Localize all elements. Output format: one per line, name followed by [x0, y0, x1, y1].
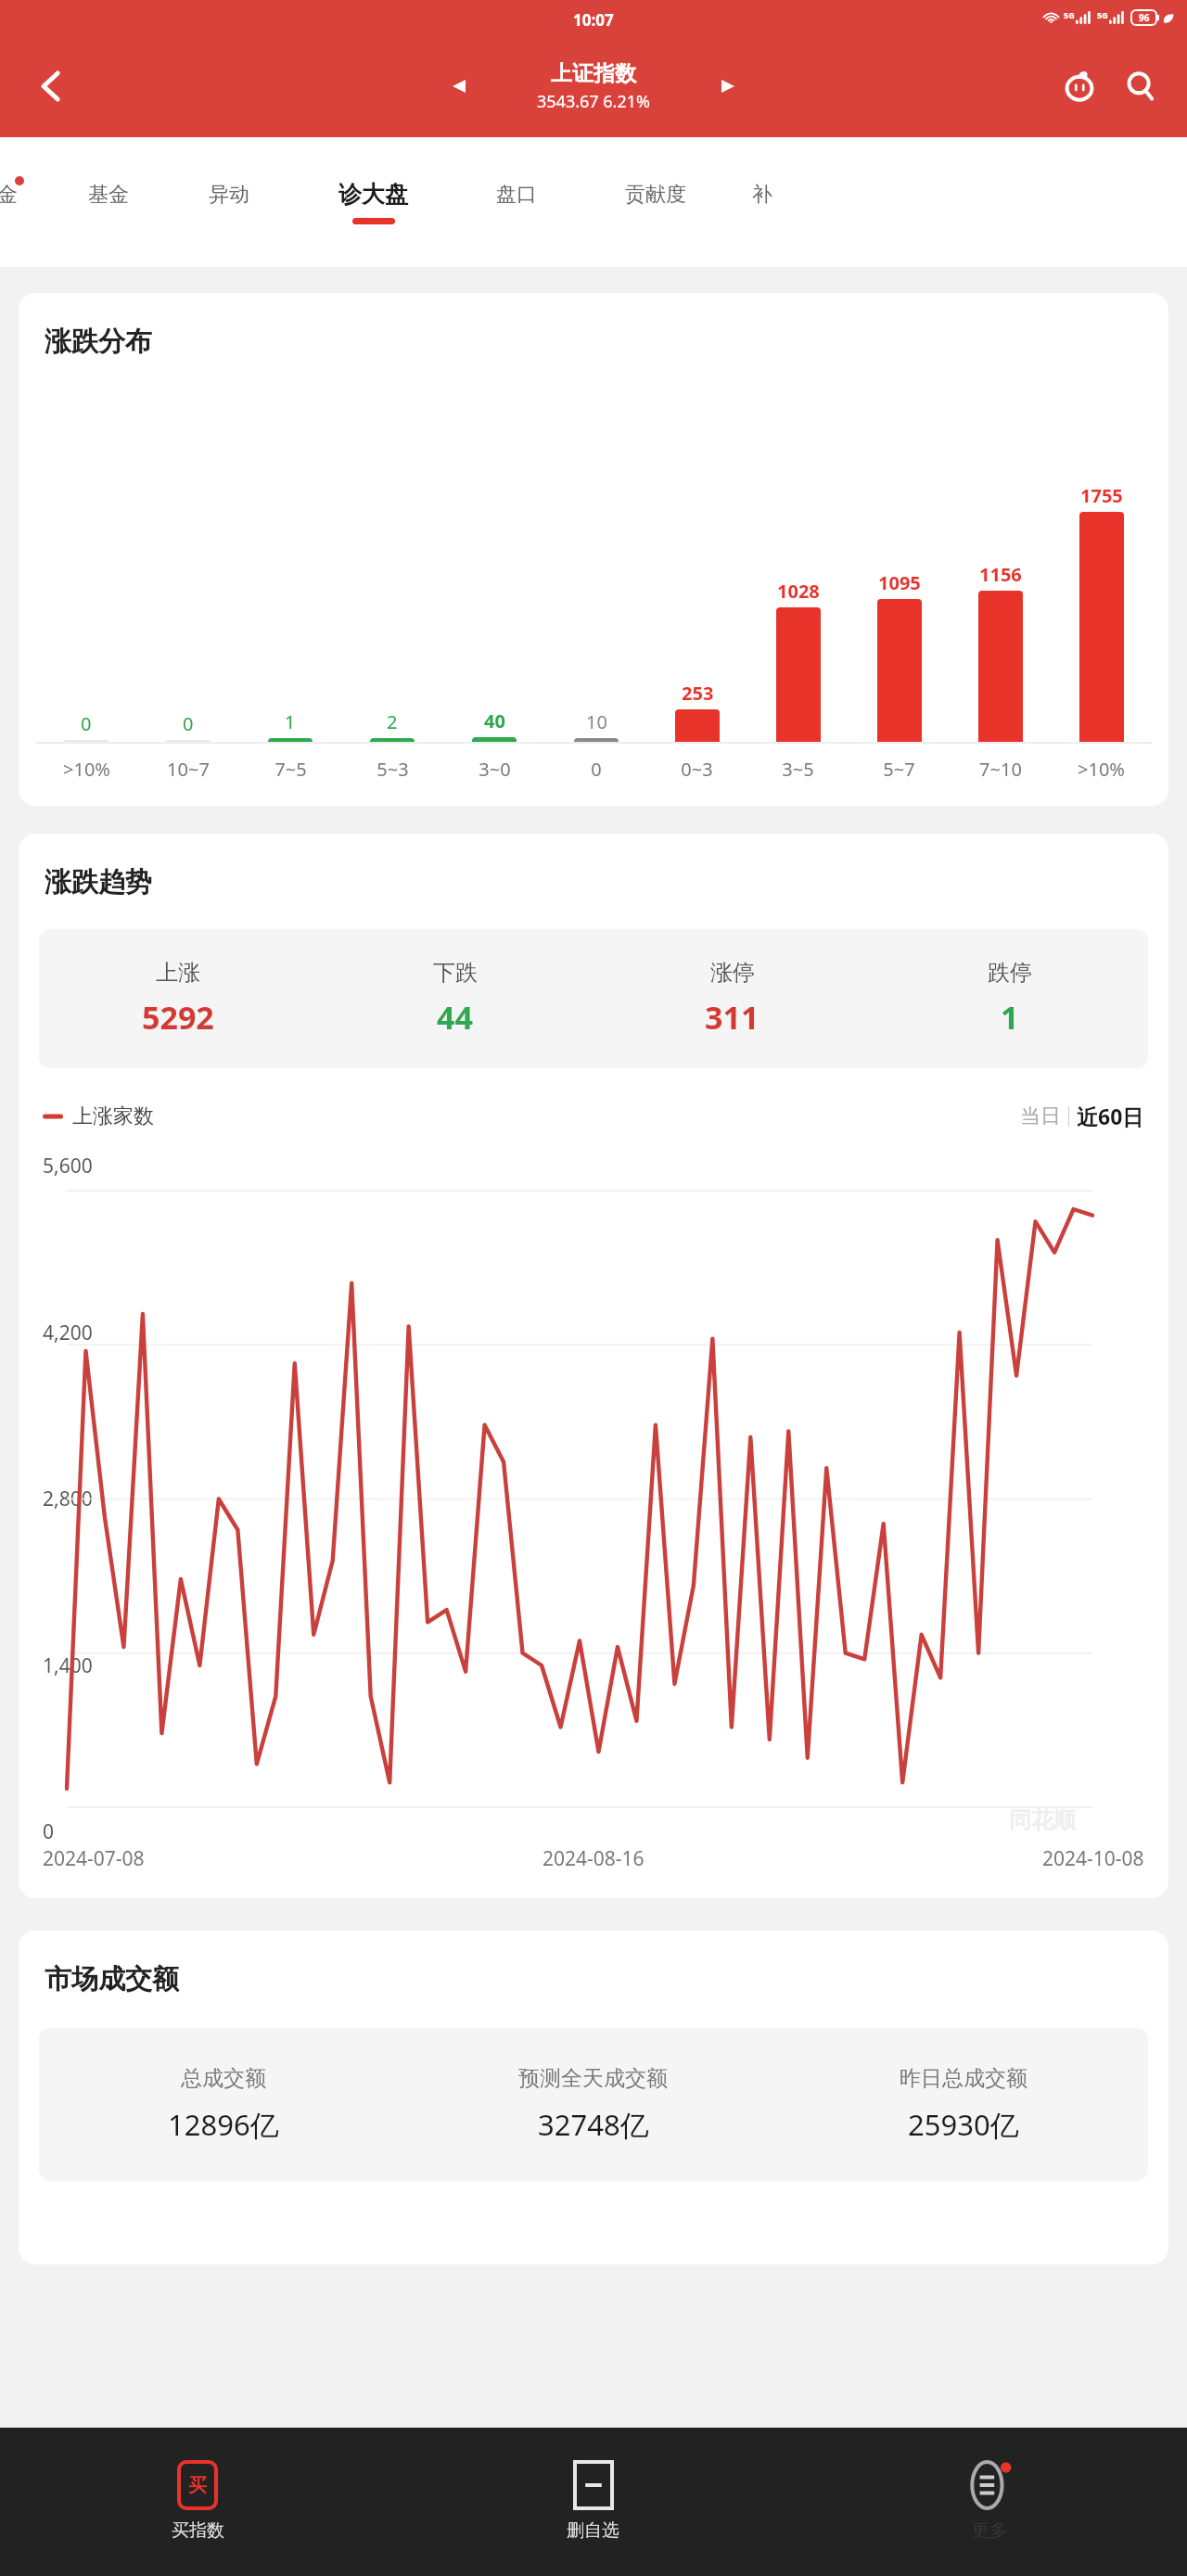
button[interactable]: More — [791, 2428, 1187, 2576]
staticText: 涨跌分布 — [45, 325, 152, 359]
button[interactable]: 贡献度 — [577, 137, 734, 267]
staticText: 3~0 — [479, 757, 511, 782]
button[interactable]: 诊大盘 — [289, 137, 456, 267]
button[interactable]: 补 — [734, 137, 790, 267]
staticText: 买 — [188, 2474, 207, 2497]
button[interactable]: 上证指数 — [537, 60, 650, 113]
staticText: 7~10 — [979, 757, 1022, 782]
staticText: 253 — [682, 681, 714, 706]
staticText: 上涨 — [156, 959, 200, 987]
button[interactable]: 跌停 — [871, 959, 1148, 1039]
staticText: 5G — [1097, 9, 1108, 20]
staticText: 0 — [183, 711, 194, 736]
staticText: 涨停 — [710, 959, 755, 987]
staticText: >10% — [63, 757, 110, 782]
staticText: 总成交额 — [181, 2065, 266, 2092]
staticText: 10~7 — [167, 757, 210, 782]
button[interactable]: Back — [26, 60, 78, 112]
button[interactable]: 下跌 — [316, 959, 593, 1039]
staticText: 0 — [81, 711, 92, 736]
staticText: 当日 — [1020, 1103, 1061, 1129]
staticText: 10 — [586, 709, 607, 734]
staticText: 1095 — [878, 570, 921, 595]
staticText: 32748亿 — [538, 2105, 649, 2144]
button[interactable]: 总成交额 — [39, 2065, 408, 2144]
staticText: 基金 — [88, 182, 129, 208]
staticText: 12896亿 — [168, 2105, 279, 2144]
staticText: 44 — [437, 996, 473, 1039]
staticText: 1 — [1001, 996, 1019, 1039]
staticText: 金 — [0, 182, 18, 208]
staticText: 贡献度 — [625, 182, 686, 208]
staticText: 异动 — [209, 182, 249, 208]
button[interactable]: 当日 — [1020, 1102, 1144, 1130]
staticText: 1028 — [777, 579, 820, 604]
button[interactable]: 盘口 — [456, 137, 577, 267]
staticText: 5,600 — [43, 1153, 93, 1180]
staticText: 0~3 — [681, 757, 713, 782]
staticText: 96 — [1139, 11, 1150, 24]
staticText: 昨日总成交额 — [900, 2065, 1027, 2092]
staticText: >10% — [1078, 757, 1125, 782]
staticText: 补 — [752, 182, 772, 208]
button[interactable]: 涨停 — [593, 959, 871, 1039]
button[interactable]: 异动 — [169, 137, 289, 267]
button[interactable]: Next index — [707, 65, 749, 108]
staticText: 3543.67 6.21% — [537, 90, 650, 113]
staticText: 3~5 — [782, 757, 814, 782]
staticText: 买指数 — [172, 2519, 224, 2542]
staticText: 跌停 — [988, 959, 1032, 987]
button[interactable]: 昨日总成交额 — [778, 2065, 1148, 2144]
staticText: 涨跌趋势 — [45, 865, 152, 899]
staticText: 7~5 — [274, 757, 307, 782]
staticText: 5G — [1064, 9, 1075, 20]
staticText: 25930亿 — [908, 2105, 1019, 2144]
staticText: 5~3 — [377, 757, 409, 782]
button[interactable]: 买 — [0, 2428, 395, 2576]
button[interactable]: Previous index — [438, 65, 480, 108]
staticText: 0 — [591, 757, 602, 782]
staticText: 2 — [387, 709, 398, 734]
staticText: 2024-08-16 — [542, 1845, 645, 1872]
staticText: 市场成交额 — [45, 1962, 179, 1996]
staticText: 近60日 — [1077, 1102, 1144, 1130]
button[interactable]: Assistant — [1053, 60, 1105, 112]
staticText: 更多 — [972, 2519, 1007, 2542]
staticText: 同花顺 — [1009, 1806, 1076, 1834]
staticText: 5292 — [142, 996, 214, 1039]
staticText: 上证指数 — [551, 60, 636, 87]
button[interactable]: Search — [1115, 60, 1167, 112]
staticText: 40 — [484, 708, 505, 733]
button[interactable]: 基金 — [48, 137, 169, 267]
button[interactable]: 删自选 — [395, 2428, 791, 2576]
staticText: 盘口 — [496, 182, 537, 208]
staticText: 1156 — [979, 562, 1022, 587]
staticText: 1,400 — [43, 1652, 93, 1679]
staticText: 1755 — [1080, 483, 1123, 508]
staticText: 1 — [285, 709, 296, 734]
staticText: 311 — [705, 996, 759, 1039]
staticText: 预测全天成交额 — [518, 2065, 668, 2092]
button[interactable]: 上涨 — [39, 959, 316, 1039]
staticText: 5~7 — [883, 757, 915, 782]
staticText: 10:07 — [573, 9, 614, 31]
button[interactable]: 金 — [0, 137, 32, 267]
staticText: 2024-07-08 — [43, 1845, 145, 1872]
staticText: 上涨家数 — [72, 1103, 154, 1129]
staticText: 4,200 — [43, 1320, 93, 1346]
staticText: 2024-10-08 — [1042, 1845, 1144, 1872]
staticText: 诊大盘 — [338, 180, 408, 209]
staticText: 2,800 — [43, 1486, 93, 1512]
staticText: 下跌 — [433, 959, 478, 987]
staticText: 0 — [43, 1818, 55, 1845]
staticText: 删自选 — [567, 2519, 619, 2542]
button[interactable]: 预测全天成交额 — [408, 2065, 778, 2144]
